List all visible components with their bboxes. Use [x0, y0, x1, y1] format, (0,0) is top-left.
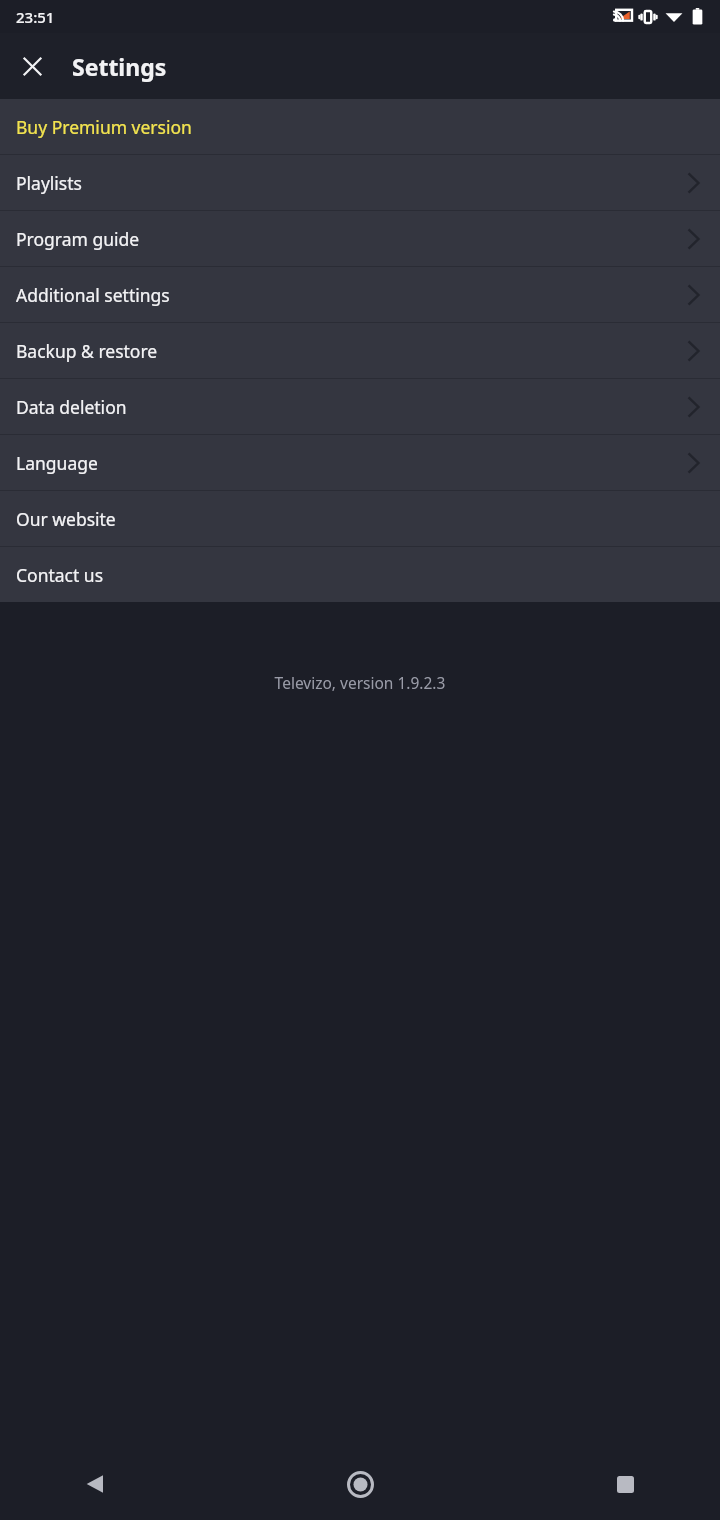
button[interactable]: Language [0, 435, 720, 490]
staticText: Our website [16, 507, 116, 531]
staticText: 23:51 [16, 7, 55, 27]
button[interactable]: Playlists [0, 155, 720, 210]
button[interactable]: Backup & restore [0, 323, 720, 378]
button[interactable]: Program guide [0, 211, 720, 266]
button[interactable]: Back [70, 1460, 118, 1508]
button[interactable]: Home [334, 1458, 386, 1510]
button[interactable]: Close [8, 42, 56, 90]
staticText: Playlists [16, 171, 82, 195]
button[interactable]: Buy Premium version [0, 99, 720, 154]
button[interactable]: Data deletion [0, 379, 720, 434]
staticText: Televizo, version 1.9.2.3 [0, 672, 720, 693]
button[interactable]: Recent apps [601, 1460, 649, 1508]
button[interactable]: Our website [0, 491, 720, 546]
button[interactable]: Contact us [0, 547, 720, 602]
staticText: Language [16, 451, 98, 475]
staticText: Backup & restore [16, 339, 158, 363]
staticText: Program guide [16, 227, 140, 251]
staticText: Additional settings [16, 283, 170, 307]
staticText: Settings [72, 51, 167, 82]
staticText: Contact us [16, 563, 104, 587]
staticText: Buy Premium version [16, 115, 192, 139]
button[interactable]: Additional settings [0, 267, 720, 322]
staticText: Data deletion [16, 395, 127, 419]
